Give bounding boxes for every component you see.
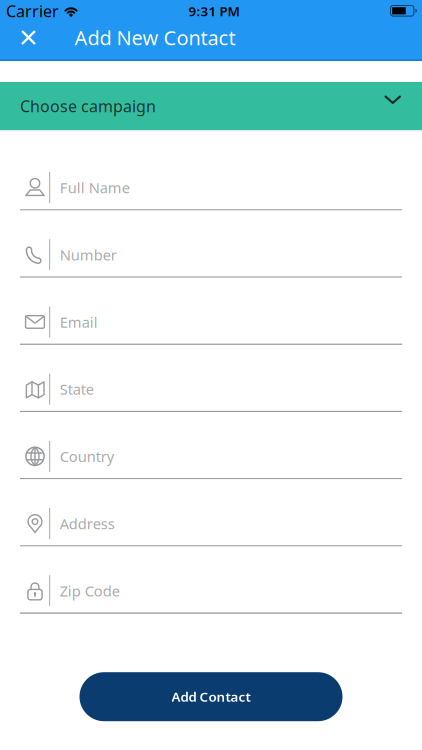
button[interactable]: Country	[0, 412, 422, 479]
button[interactable]: Choose campaign	[0, 82, 422, 130]
button[interactable]: Number	[0, 210, 422, 278]
staticText: 9:31 PM	[188, 2, 239, 20]
staticText: Full Name	[60, 178, 130, 197]
button[interactable]: Full Name	[0, 143, 422, 210]
staticText: Choose campaign	[20, 95, 156, 117]
button[interactable]: Email	[0, 278, 422, 345]
staticText: Email	[60, 312, 98, 332]
button[interactable]: State	[0, 345, 422, 412]
staticText: Add New Contact	[74, 24, 235, 51]
button[interactable]: Address	[0, 479, 422, 546]
staticText: State	[60, 379, 94, 399]
staticText: Country	[60, 447, 114, 466]
staticText: Zip Code	[60, 581, 120, 600]
staticText: Number	[60, 245, 117, 264]
button[interactable]: Close	[22, 31, 35, 44]
staticText: Address	[60, 514, 115, 533]
staticText: Carrier	[6, 0, 59, 22]
button[interactable]: Add Contact	[79, 672, 342, 721]
staticText: Add Contact	[171, 688, 250, 705]
button[interactable]: Zip Code	[0, 546, 422, 614]
